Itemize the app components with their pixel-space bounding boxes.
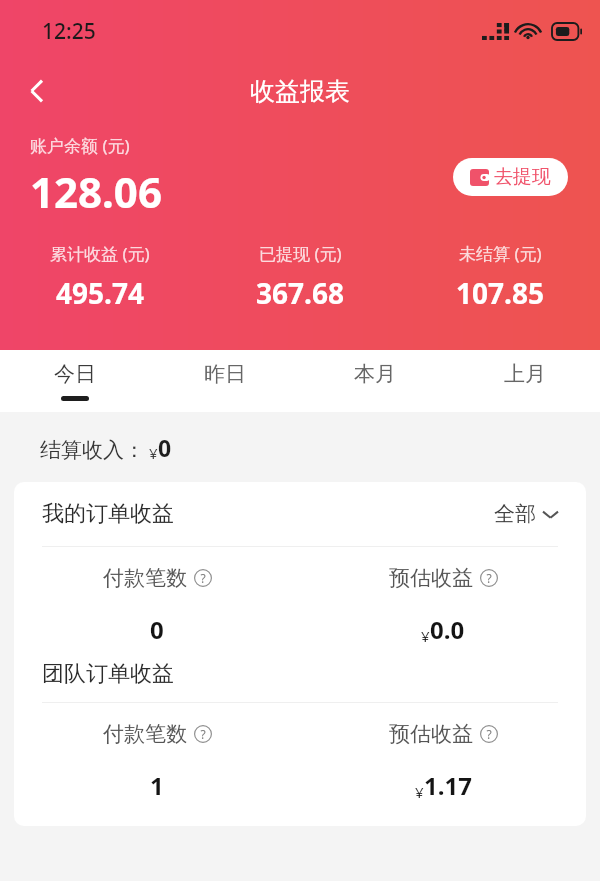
staticText: 结算收入： <box>40 437 145 463</box>
staticText: 去提现 <box>494 165 551 189</box>
staticText: 我的订单收益 <box>42 500 494 528</box>
staticText: 付款笔数 <box>103 721 187 747</box>
staticText: 107.85 <box>456 274 544 312</box>
staticText: 367.68 <box>256 274 344 312</box>
staticText: 已提现 (元) <box>259 242 342 265</box>
staticText: 收益报表 <box>250 76 350 107</box>
button[interactable]: Back <box>14 68 60 114</box>
staticText: ? <box>200 726 206 742</box>
staticText: 本月 <box>354 361 396 387</box>
staticText: 0 <box>158 432 172 463</box>
staticText: 12:25 <box>42 17 96 46</box>
button[interactable]: 今日 <box>0 350 150 412</box>
staticText: ? <box>200 570 206 586</box>
staticText: 0 <box>150 613 164 646</box>
button[interactable]: 付款笔数 <box>14 565 300 646</box>
staticText: 0.0 <box>430 613 465 646</box>
staticText: 上月 <box>504 361 546 387</box>
button[interactable]: 全部 <box>494 501 558 527</box>
button[interactable]: 预估收益 <box>300 721 586 802</box>
staticText: 账户余额 (元) <box>30 134 130 157</box>
staticText: ¥ <box>415 782 424 802</box>
staticText: 全部 <box>494 501 536 527</box>
staticText: 未结算 (元) <box>459 242 542 265</box>
staticText: 今日 <box>54 361 96 387</box>
staticText: ? <box>486 726 492 742</box>
staticText: 128.06 <box>30 163 162 220</box>
button[interactable]: 本月 <box>300 350 450 412</box>
staticText: 1 <box>150 769 164 802</box>
button[interactable]: 预估收益 <box>300 565 586 646</box>
staticText: 预估收益 <box>389 565 473 591</box>
button[interactable]: 付款笔数 <box>14 721 300 802</box>
button[interactable]: 去提现 <box>453 158 568 196</box>
button[interactable]: 昨日 <box>150 350 300 412</box>
staticText: 团队订单收益 <box>42 660 174 688</box>
staticText: 预估收益 <box>389 721 473 747</box>
staticText: 1.17 <box>424 769 472 802</box>
staticText: ¥ <box>149 443 158 463</box>
staticText: 累计收益 (元) <box>50 242 150 265</box>
staticText: ? <box>486 570 492 586</box>
staticText: 付款笔数 <box>103 565 187 591</box>
staticText: ¥ <box>421 626 430 646</box>
staticText: 昨日 <box>204 361 246 387</box>
button[interactable]: 上月 <box>450 350 600 412</box>
staticText: 495.74 <box>56 274 144 312</box>
